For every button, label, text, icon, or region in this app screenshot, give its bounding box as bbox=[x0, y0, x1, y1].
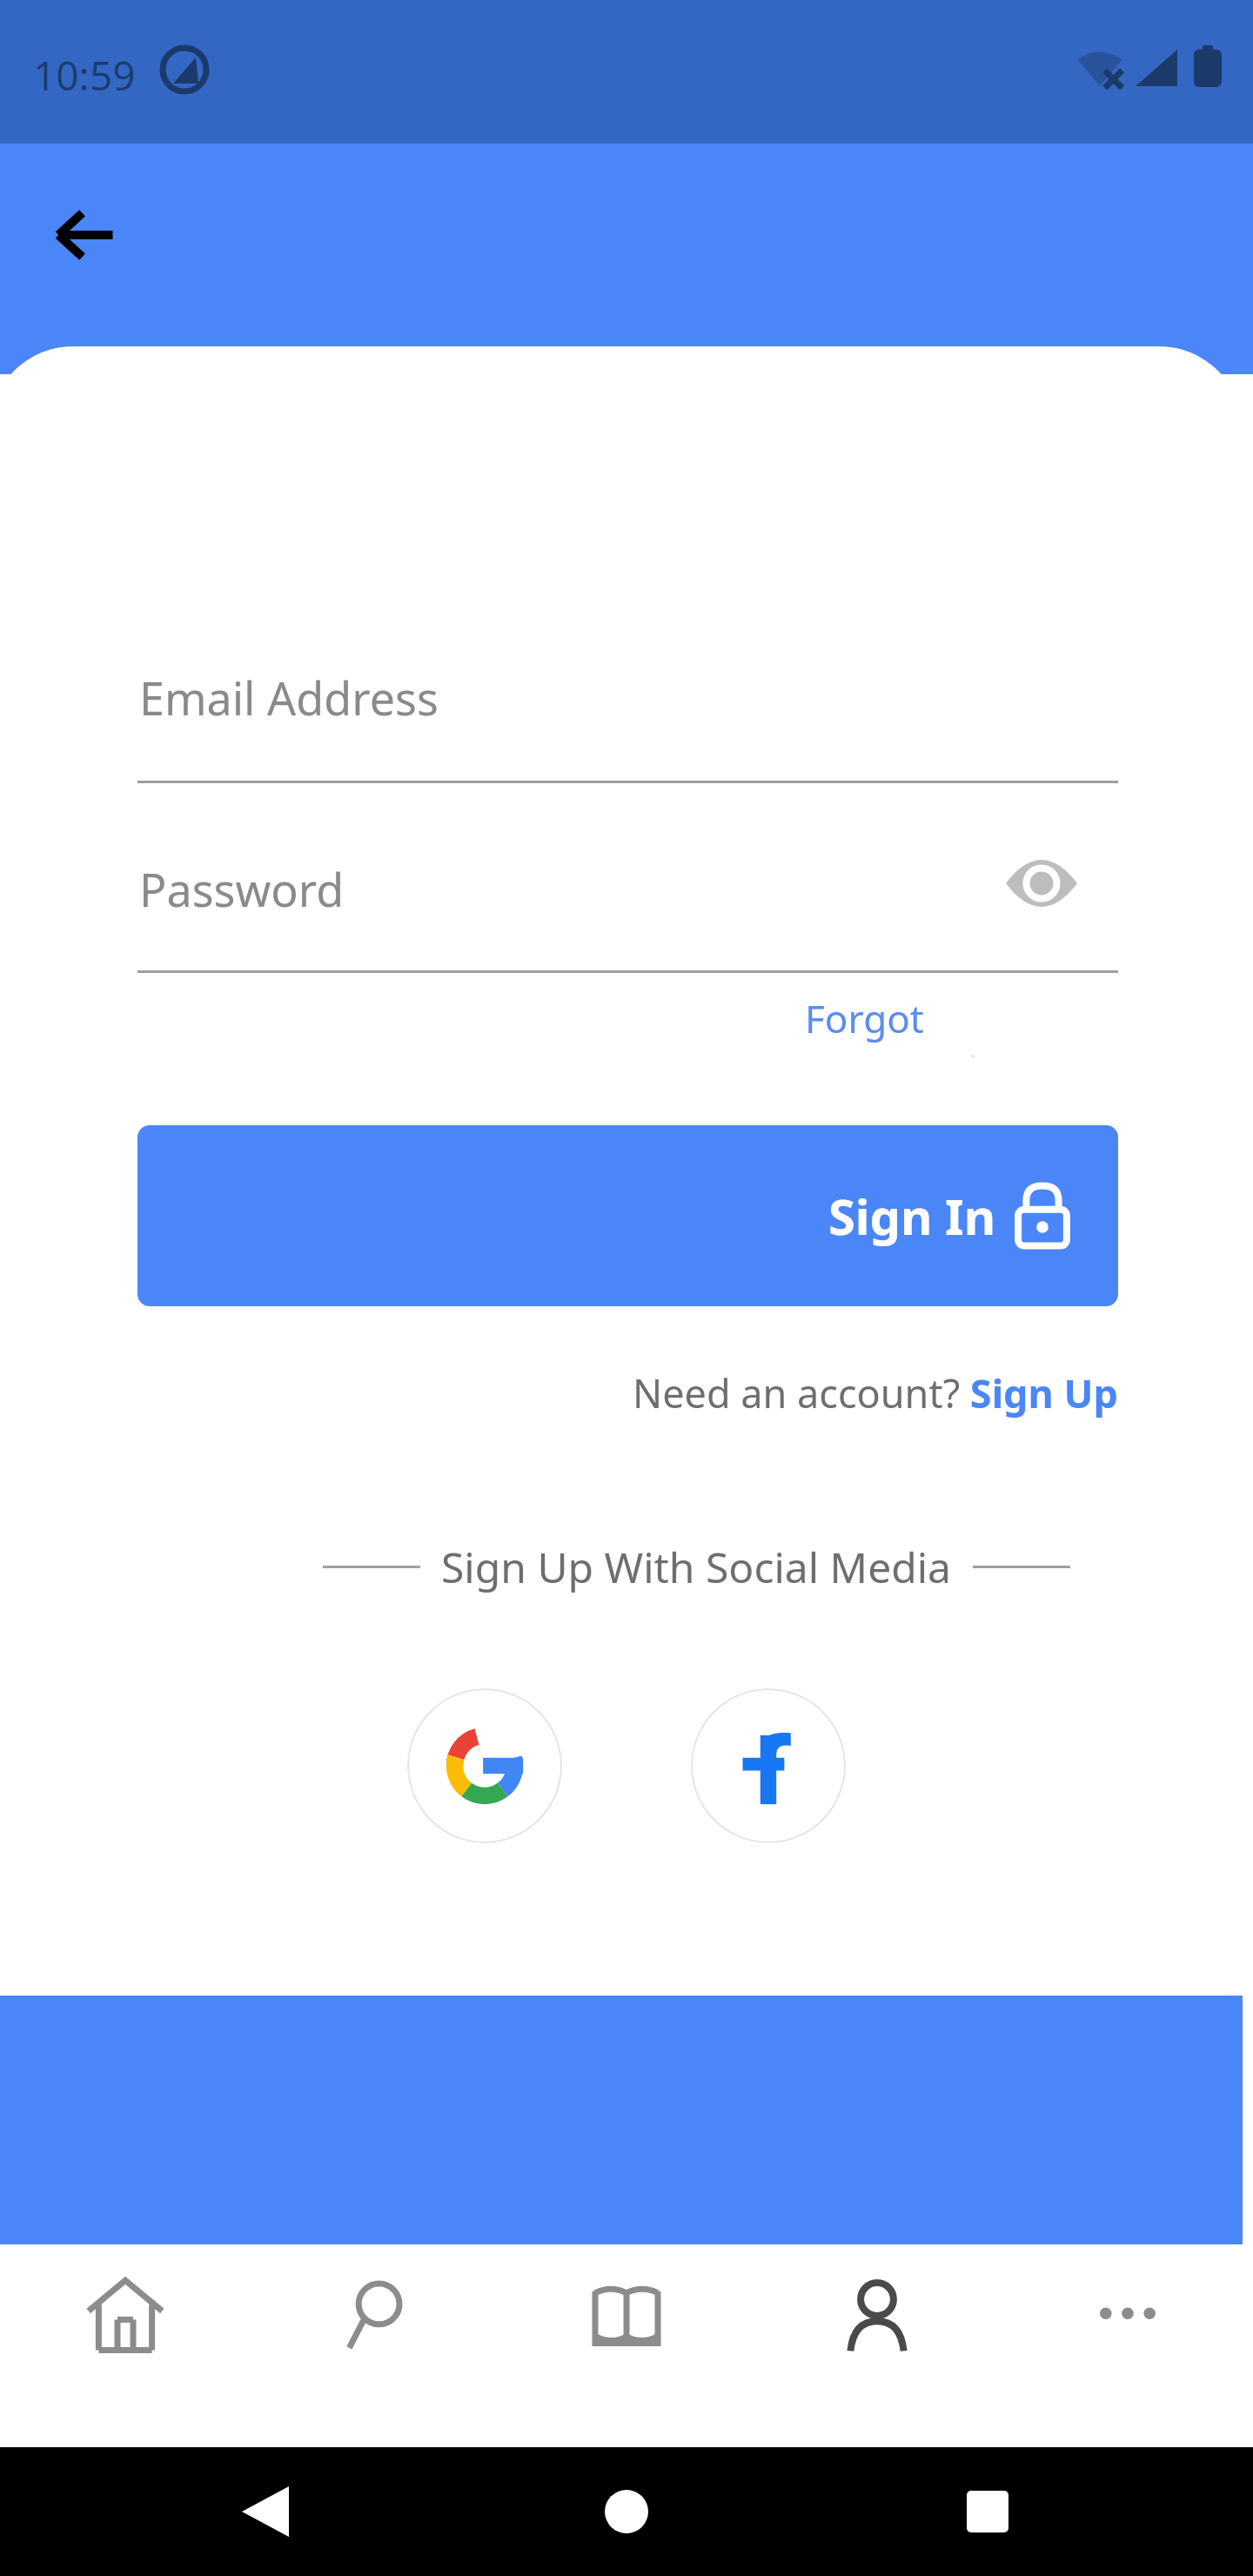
button[interactable]: Profile bbox=[752, 2244, 1002, 2447]
button[interactable]: Recent apps bbox=[931, 2468, 1044, 2555]
staticText: Email Address bbox=[139, 667, 439, 728]
button[interactable]: Back bbox=[35, 184, 136, 285]
button[interactable]: Home bbox=[0, 2244, 251, 2447]
button[interactable]: Need an account? Sign Up bbox=[600, 1359, 1118, 1426]
button[interactable]: Show password bbox=[1002, 846, 1081, 921]
staticText: Sign Up With Social Media bbox=[441, 1539, 952, 1595]
button[interactable]: More bbox=[1002, 2244, 1253, 2447]
staticText: Forgot Password ? bbox=[805, 992, 1118, 1057]
staticText: Sign In bbox=[828, 1183, 996, 1249]
button[interactable]: Sign In bbox=[137, 1125, 1118, 1306]
button[interactable]: Sign up with Google bbox=[407, 1688, 562, 1843]
staticText: Need an account? Sign Up bbox=[633, 1366, 1118, 1419]
button[interactable]: Library bbox=[501, 2244, 752, 2447]
button[interactable]: Forgot Password ? bbox=[805, 992, 1118, 1057]
button[interactable]: Home bbox=[570, 2468, 683, 2555]
button[interactable]: Sign up with Facebook bbox=[691, 1688, 846, 1843]
button[interactable]: Search bbox=[251, 2244, 501, 2447]
staticText: 10:59 bbox=[33, 48, 136, 103]
staticText: Password bbox=[139, 858, 345, 920]
button[interactable]: Back bbox=[209, 2468, 322, 2555]
